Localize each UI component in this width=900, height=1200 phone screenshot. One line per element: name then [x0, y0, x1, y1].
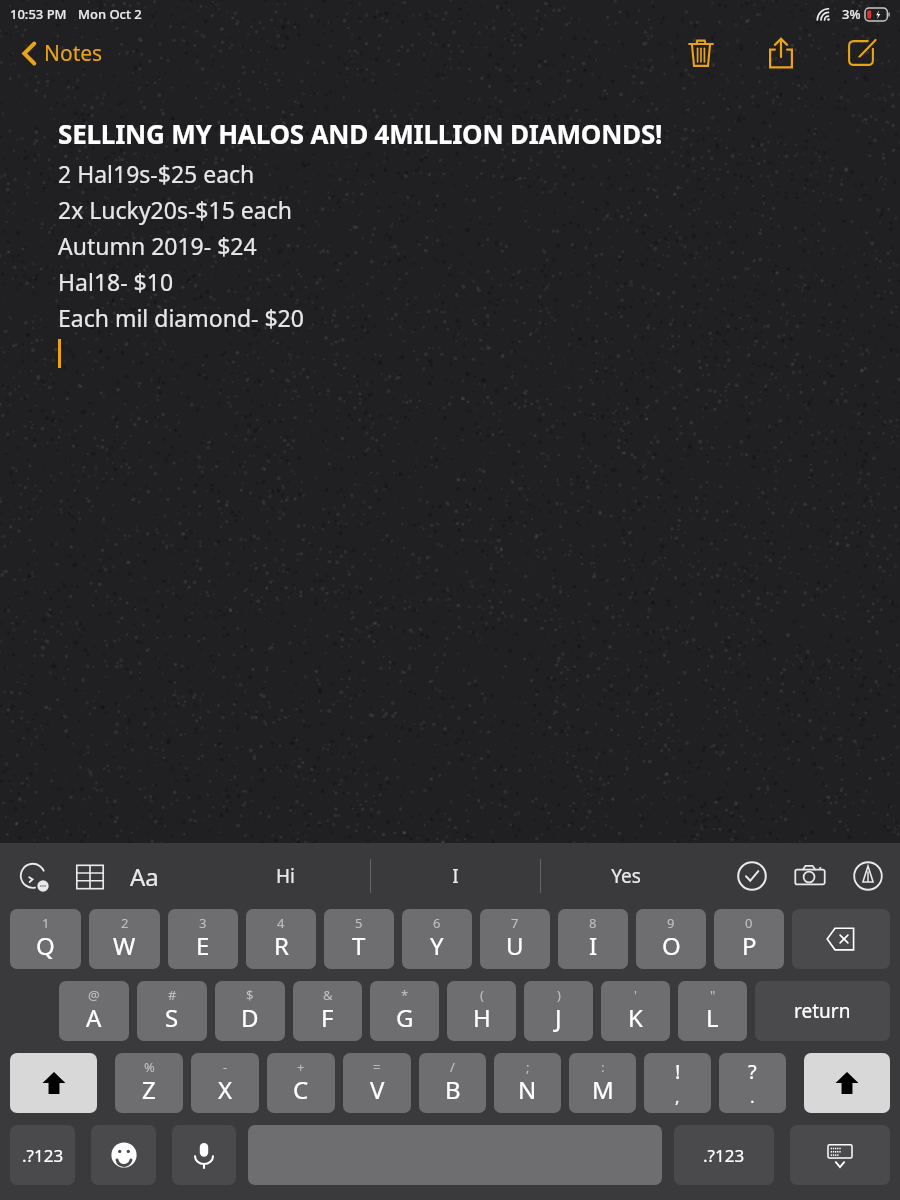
staticText: % — [144, 1058, 155, 1076]
staticText: .?123 — [22, 1144, 64, 1167]
staticText: @ — [88, 986, 100, 1004]
staticText: Z — [142, 1073, 156, 1106]
button[interactable]: Shift — [804, 1053, 890, 1113]
button[interactable]: 6 — [402, 909, 472, 969]
staticText: H — [473, 1001, 491, 1034]
button[interactable]: 8 — [558, 909, 628, 969]
button[interactable]: ! — [644, 1053, 711, 1113]
button[interactable]: ? — [719, 1053, 786, 1113]
staticText: 10:53 PM — [10, 5, 67, 23]
staticText: 0 — [745, 914, 753, 932]
button[interactable]: return — [755, 981, 890, 1041]
button[interactable]: Yes — [541, 843, 710, 909]
button[interactable]: ( — [447, 981, 516, 1041]
button[interactable]: ; — [494, 1053, 561, 1113]
button[interactable]: 1 — [10, 909, 81, 969]
button[interactable]: / — [419, 1053, 486, 1113]
staticText: A — [86, 1001, 102, 1034]
button[interactable]: - — [191, 1053, 259, 1113]
button[interactable]: # — [137, 981, 207, 1041]
staticText: E — [196, 929, 210, 962]
staticText: $ — [246, 986, 254, 1004]
staticText: 9 — [667, 914, 675, 932]
button[interactable]: * — [370, 981, 439, 1041]
staticText: ) — [557, 986, 561, 1004]
button[interactable]: I — [371, 843, 540, 909]
button[interactable]: : — [569, 1053, 636, 1113]
button[interactable]: " — [678, 981, 747, 1041]
staticText: & — [323, 986, 333, 1004]
staticText: ! — [675, 1058, 681, 1085]
button[interactable]: + — [267, 1053, 335, 1113]
staticText: * — [401, 986, 409, 1004]
staticText: - — [223, 1058, 228, 1076]
staticText: 4 — [277, 914, 285, 932]
staticText: U — [506, 929, 524, 962]
staticText: ; — [526, 1058, 530, 1076]
button[interactable]: .?123 — [10, 1125, 75, 1185]
button[interactable]: Emoji — [91, 1125, 156, 1185]
button[interactable]: Undo — [14, 857, 54, 897]
staticText: W — [113, 929, 136, 962]
button[interactable]: Aa — [126, 856, 163, 897]
staticText: 6 — [433, 914, 441, 932]
staticText: S — [165, 1001, 179, 1034]
button[interactable]: Markup — [848, 856, 888, 896]
staticText: I — [452, 863, 459, 889]
button[interactable]: 9 — [636, 909, 706, 969]
staticText: I — [589, 929, 598, 962]
staticText: F — [321, 1001, 334, 1034]
button[interactable]: Share — [758, 30, 804, 76]
staticText: Aa — [130, 860, 159, 893]
staticText: R — [274, 929, 289, 962]
button[interactable]: Shift — [10, 1053, 97, 1113]
staticText: ? — [748, 1058, 757, 1085]
button[interactable]: 3 — [168, 909, 238, 969]
staticText: 2 Hal19s-$25 each — [58, 158, 255, 189]
staticText: : — [601, 1058, 605, 1076]
staticText: Y — [430, 929, 444, 962]
staticText: Hal18- $10 — [58, 266, 174, 297]
button[interactable]: Backspace — [792, 909, 890, 969]
staticText: 7 — [511, 914, 519, 932]
staticText: T — [352, 929, 366, 962]
button[interactable]: 7 — [480, 909, 550, 969]
staticText: / — [450, 1058, 455, 1076]
staticText: V — [370, 1073, 385, 1106]
button[interactable]: Delete — [678, 30, 724, 76]
button[interactable]: 4 — [246, 909, 316, 969]
staticText: Notes — [44, 39, 103, 68]
button[interactable]: .?123 — [674, 1125, 774, 1185]
staticText: = — [373, 1058, 381, 1076]
button[interactable]: Checklist — [732, 856, 772, 896]
button[interactable]: % — [115, 1053, 183, 1113]
staticText: return — [794, 998, 851, 1024]
staticText: Autumn 2019- $24 — [58, 230, 257, 261]
staticText: 8 — [589, 914, 597, 932]
button[interactable]: $ — [215, 981, 285, 1041]
staticText: M — [592, 1073, 614, 1106]
button[interactable]: Compose — [838, 30, 884, 76]
button[interactable]: Hi — [200, 843, 370, 909]
staticText: + — [297, 1058, 305, 1076]
button[interactable]: = — [343, 1053, 411, 1113]
button[interactable]: Camera — [789, 855, 831, 897]
staticText: SELLING MY HALOS AND 4MILLION DIAMONDS! — [58, 116, 663, 151]
staticText: B — [445, 1073, 461, 1106]
button[interactable]: Table — [70, 857, 110, 897]
staticText: L — [706, 1001, 719, 1034]
button[interactable]: @ — [59, 981, 129, 1041]
button[interactable]: & — [293, 981, 362, 1041]
button[interactable]: Hide keyboard — [790, 1125, 890, 1185]
staticText: X — [218, 1073, 233, 1106]
button[interactable]: 5 — [324, 909, 394, 969]
staticText: Mon Oct 2 — [78, 5, 142, 23]
button[interactable]: Dictation — [172, 1125, 236, 1185]
button[interactable]: ' — [601, 981, 670, 1041]
button[interactable]: 2 — [89, 909, 160, 969]
button[interactable]: 0 — [714, 909, 784, 969]
button[interactable]: ) — [524, 981, 593, 1041]
staticText: , — [675, 1085, 680, 1108]
button[interactable]: Notes — [18, 35, 107, 72]
